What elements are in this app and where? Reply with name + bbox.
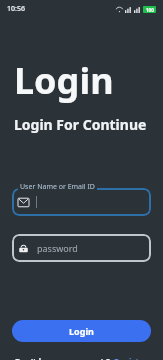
staticText: Login: [69, 325, 94, 337]
staticText: password: [37, 242, 78, 254]
staticText: User Name or Email ID: [20, 182, 95, 192]
staticText: 10:56: [7, 4, 25, 14]
staticText: Login: [14, 56, 114, 105]
staticText: Don't have an account ?: [15, 356, 110, 360]
staticText: 100: [146, 7, 154, 13]
staticText: Login For Continue: [14, 115, 147, 134]
button[interactable]: Login: [12, 320, 151, 342]
button[interactable]: [12, 188, 151, 216]
staticText: Register: [114, 356, 148, 360]
button[interactable]: Register: [114, 356, 148, 360]
button[interactable]: password: [12, 234, 151, 262]
